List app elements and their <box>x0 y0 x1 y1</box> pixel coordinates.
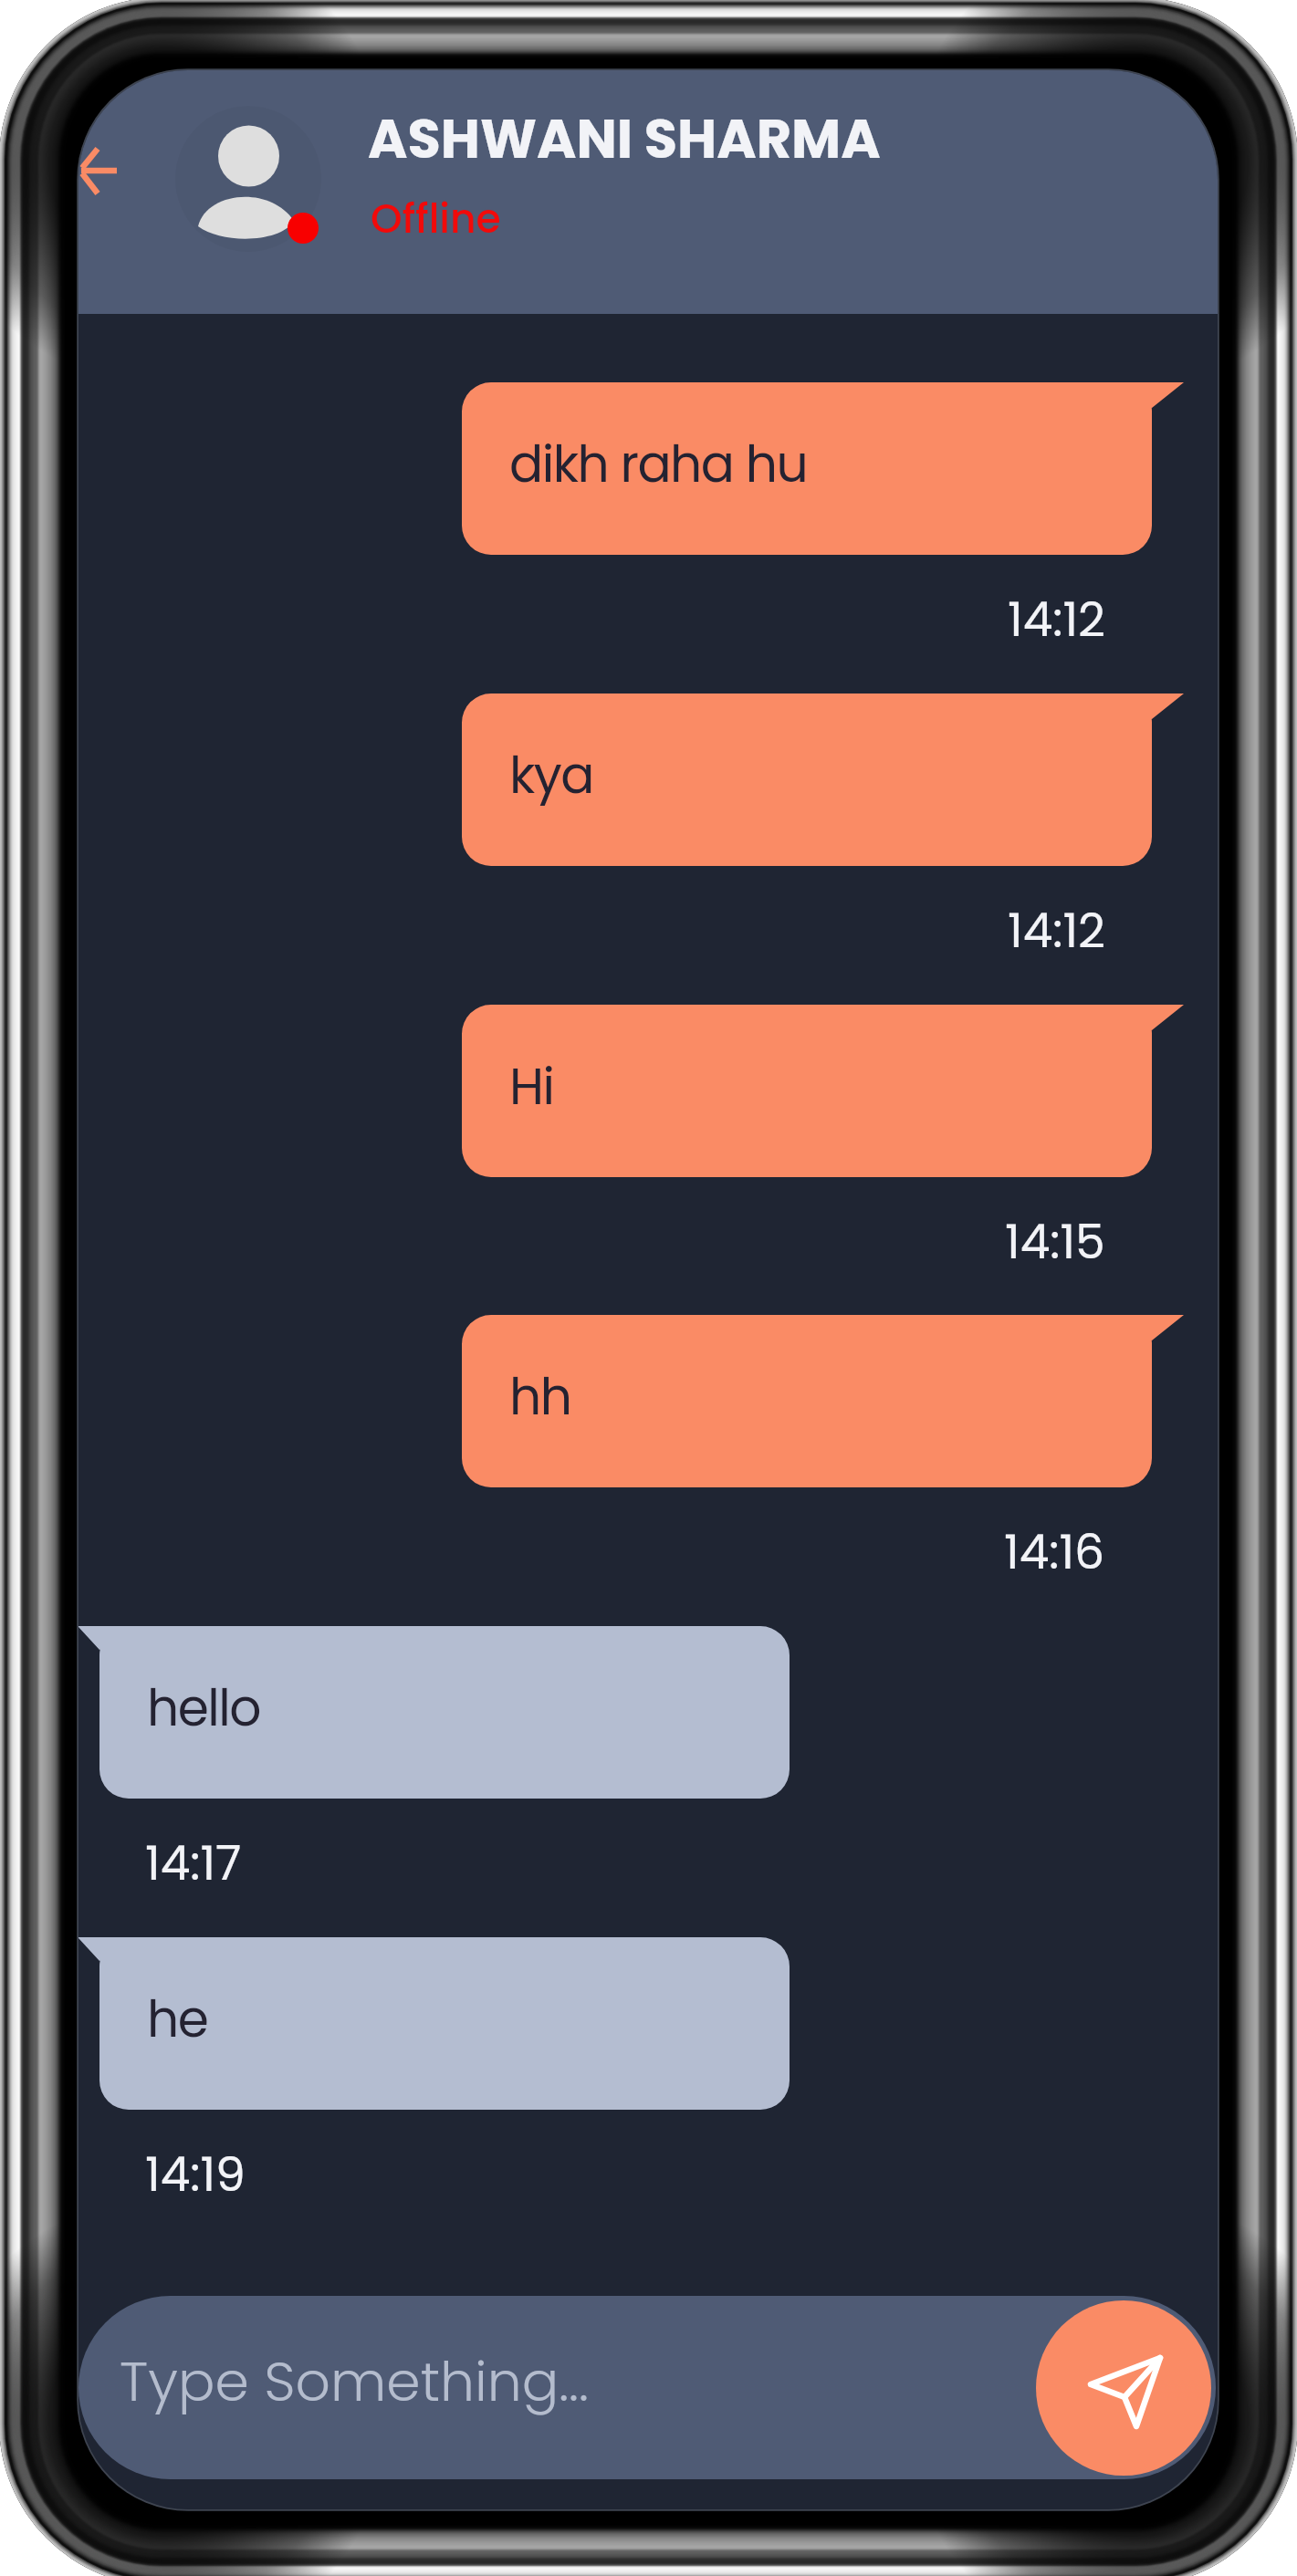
button[interactable]: Back <box>78 128 140 212</box>
staticText: 14:12 <box>1008 897 1105 964</box>
button[interactable]: hello <box>78 1626 800 1799</box>
staticText: Offline <box>371 191 501 247</box>
button[interactable]: hh <box>462 1315 1184 1487</box>
staticText: 14:17 <box>145 1830 242 1896</box>
button[interactable]: kya <box>462 694 1184 866</box>
button[interactable]: Contact profile: ASHWANI SHARMA, Offline <box>175 91 1088 256</box>
button[interactable]: Type Something... <box>78 2296 1216 2479</box>
staticText: 14:19 <box>145 2141 246 2207</box>
button[interactable]: Hi <box>462 1005 1184 1177</box>
staticText: Type Something... <box>120 2343 589 2420</box>
staticText: 14:12 <box>1008 586 1105 652</box>
staticText: 14:16 <box>1004 1518 1105 1585</box>
staticText: kya <box>509 740 593 810</box>
staticText: hello <box>147 1673 261 1743</box>
staticText: dikh raha hu <box>509 429 808 499</box>
staticText: ASHWANI SHARMA <box>368 101 881 177</box>
staticText: hh <box>509 1361 571 1432</box>
button[interactable]: dikh raha hu <box>462 382 1184 555</box>
button[interactable]: Send <box>1036 2300 1211 2476</box>
staticText: he <box>147 1984 208 2054</box>
staticText: Hi <box>509 1051 554 1121</box>
button[interactable]: he <box>78 1937 800 2110</box>
staticText: 14:15 <box>1005 1208 1105 1275</box>
